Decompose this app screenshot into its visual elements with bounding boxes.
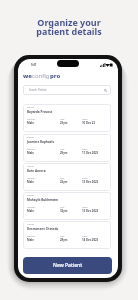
staticText: Age [60,117,65,120]
staticText: Gender [27,117,36,120]
staticText: pro [50,72,61,80]
staticText: 11 Dec 2023 [82,151,99,155]
staticText: Male [27,151,34,155]
staticText: 14 Dec 2023 [82,238,99,242]
staticText: 10 Dec 23 [82,121,96,125]
staticText: Date [82,117,88,120]
button[interactable]: Name [23,221,111,249]
staticText: Search Patient [29,88,47,92]
staticText: Gender [27,205,36,208]
staticText: we [23,72,32,80]
staticText: Gender [27,234,36,237]
staticText: Age [60,176,65,179]
staticText: 13 Dec 2023 [82,209,99,213]
staticText: Male [27,121,34,125]
staticText: Jasmine Raphaels [27,140,55,144]
staticText: Kate Aurora [27,169,46,173]
staticText: 32yrs [60,209,68,213]
staticText: 9:41 [31,63,37,67]
staticText: Name [27,135,34,138]
staticText: Age [60,234,65,237]
staticText: Gender [27,147,36,150]
button[interactable]: Name [23,134,111,162]
staticText: Male [27,238,34,242]
staticText: Gender [27,176,36,179]
staticText: Date [82,205,88,208]
staticText: Organize your patient details [36,16,102,38]
staticText: 22yrs [60,180,68,184]
button[interactable]: New Patient [23,257,112,274]
staticText: Name [27,105,34,108]
staticText: config [32,72,50,80]
staticText: New Patient [53,262,83,269]
staticText: Mohayib Bukhmann [27,198,59,202]
button[interactable]: Name [23,104,111,132]
staticText: Date [82,176,88,179]
staticText: Male [27,180,34,184]
staticText: 23yrs [60,121,68,125]
staticText: Male [27,209,34,213]
staticText: Age [60,205,65,208]
staticText: Date [82,147,88,150]
staticText: 12 Dec 2023 [82,180,99,184]
staticText: Desmonent Chinedu [27,227,59,231]
other: Search [104,89,107,92]
button[interactable]: Name [23,163,111,191]
button[interactable]: Name [23,192,111,220]
staticText: Name [27,222,34,225]
staticText: Bayarda Provost [27,110,53,114]
staticText: Date [82,234,88,237]
staticText: Age [60,147,65,150]
staticText: Name [27,193,34,196]
staticText: 28yrs [60,238,68,242]
button[interactable]: Search Patient [23,85,111,95]
staticText: Name [27,164,34,167]
staticText: 29yrs [60,151,68,155]
